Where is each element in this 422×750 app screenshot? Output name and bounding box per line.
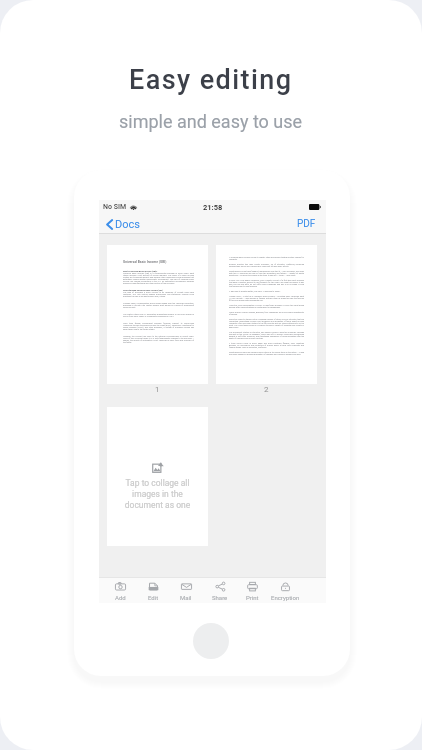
staticText: More than federal government provides fi…: [123, 322, 194, 330]
staticText: 1: [155, 385, 160, 394]
button[interactable]: Edit document: [136, 577, 170, 603]
button[interactable]: PDF: [295, 216, 318, 232]
staticText: Tap to collage all images in the documen…: [121, 478, 194, 510]
staticText: Print: [246, 594, 259, 601]
staticText: And Martin Luther King Jr. advocated "gu…: [123, 313, 194, 317]
staticText: Nonetheless income has become more criti…: [229, 351, 304, 355]
staticText: Docs: [115, 218, 140, 231]
staticText: Universal basic income (UBI) is a govern…: [123, 272, 194, 284]
staticText: Mail: [180, 594, 192, 601]
staticText: Roughly monthly two daily county Provide…: [229, 263, 304, 267]
staticText: Amid the crush exacerbated a COVID-19 re…: [229, 304, 304, 308]
staticText: Edit: [148, 594, 159, 601]
staticText: What is Universal Basic Income (UBI)?: [123, 270, 158, 272]
staticText: Universal Basic Income (UBI): [123, 260, 167, 264]
button[interactable]: Mail: [169, 577, 203, 603]
staticText: We're too called to staying out in a gro…: [229, 318, 304, 328]
staticText: Understanding Universal Basic Income (UB…: [123, 289, 163, 291]
button[interactable]: Universal Basic Income (UBI): [107, 245, 208, 384]
staticText: In early 2019 she began receiving $500 a…: [229, 279, 304, 287]
staticText: The movement started by Stockton, has ga…: [229, 331, 304, 339]
staticText: Encryption: [271, 594, 300, 601]
staticText: Mayor mayors Mayors Builder, Biensaid, f…: [229, 311, 304, 315]
staticText: 21:58: [203, 203, 223, 212]
staticText: PDF: [297, 218, 316, 230]
staticText: Thomas Paine, a pamphleteer whose ideas …: [123, 302, 194, 308]
staticText: Easy editing: [129, 64, 293, 96]
staticText: A universal basic income closer to reali…: [229, 256, 304, 260]
staticText: "I was able to breathe better," she says…: [229, 290, 281, 292]
staticText: The idea of providing a basic income to …: [123, 291, 194, 297]
staticText: Share: [212, 594, 228, 601]
staticText: Andrew Yang — a still the a "universal" …: [229, 295, 304, 301]
staticText: However, the concept has risen to the na…: [123, 335, 194, 343]
button[interactable]: Add page: [103, 577, 137, 603]
staticText: "I think GOMM holds in much again and mo…: [229, 342, 304, 348]
button[interactable]: Docs: [105, 216, 141, 233]
staticText: No SIM: [103, 203, 127, 211]
button[interactable]: A universal basic income closer to reali…: [216, 245, 317, 384]
button[interactable]: Encryption: [268, 577, 302, 603]
button[interactable]: Share: [203, 577, 237, 603]
staticText: simple and easy to use: [119, 111, 303, 132]
staticText: Add: [115, 594, 126, 601]
button[interactable]: Print: [235, 577, 269, 603]
staticText: 2: [264, 385, 269, 394]
staticText: Nonetheless you get relief support, reme…: [229, 270, 304, 276]
button[interactable]: Tap to collage all images in the documen…: [107, 407, 208, 546]
